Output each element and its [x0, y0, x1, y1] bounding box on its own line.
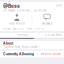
staticText: 317 Followers — [17, 9, 32, 12]
staticText: "Coffee first, then code." — [3, 45, 40, 49]
staticText: 42 Tweets — [3, 9, 15, 12]
staticText: Message — [42, 22, 53, 25]
staticText: Photos — [17, 33, 27, 37]
staticText: @Bess — [3, 3, 20, 9]
button[interactable]: Edit — [56, 3, 62, 7]
staticText: 88 Following — [34, 9, 49, 12]
staticText: Report Abuse — [41, 52, 61, 56]
button[interactable]: Message — [32, 14, 62, 25]
button[interactable]: Add Friend — [2, 14, 32, 25]
staticText: Currently Allowing — [3, 52, 34, 56]
staticText: Add Friend — [9, 22, 25, 25]
staticText: Edit — [56, 4, 62, 7]
staticText: 4.2 GB free — [45, 33, 62, 37]
staticText: Joined June 2019 · New York, NY — [3, 27, 45, 30]
button[interactable]: Report Abuse — [41, 52, 61, 56]
staticText: About — [3, 41, 13, 45]
